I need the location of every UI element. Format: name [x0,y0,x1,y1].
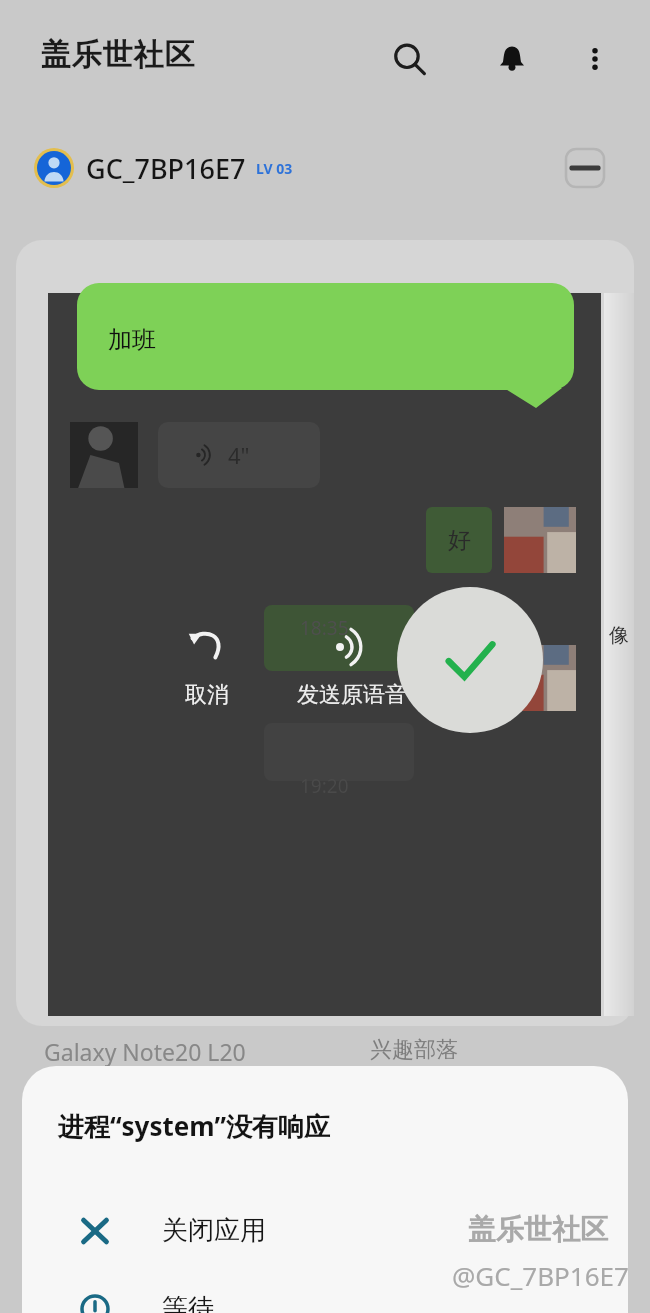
staticText: Galaxy Note20 L20 [44,1036,246,1067]
button[interactable]: Search [384,34,434,84]
staticText: 盖乐世社区 [40,36,195,74]
staticText: 像 [609,623,629,648]
button[interactable]: Confirm [397,587,543,733]
staticText: GC_7BP16E7 [86,150,246,187]
staticText: 关闭应用 [162,1214,266,1247]
staticText: 好 [448,526,471,555]
staticText: @GC_7BP16E7 [452,1258,629,1293]
staticText: 加班 [108,325,156,355]
staticText: 等待 [162,1292,214,1313]
button[interactable]: 发送原语音 [264,613,440,723]
button[interactable]: Collapse [562,145,608,191]
staticText: 取消 [185,681,229,709]
staticText: 进程“system”没有响应 [58,1108,330,1144]
staticText: 18:35 [300,615,349,641]
button[interactable]: 关闭应用 [22,1190,628,1270]
button[interactable]: 取消 [152,613,262,723]
button[interactable]: Notifications [487,34,537,84]
button[interactable]: 等待 [22,1272,628,1313]
staticText: 发送原语音 [297,681,407,709]
staticText: 兴趣部落 [370,1036,458,1064]
staticText: 盖乐世社区 [468,1212,608,1247]
staticText: 4" [228,440,250,470]
button[interactable]: More options [570,34,620,84]
button[interactable]: GC_7BP16E7 [34,140,364,196]
button[interactable]: 4" [158,422,320,488]
staticText: 19:20 [300,773,349,799]
staticText: LV 03 [256,159,293,178]
